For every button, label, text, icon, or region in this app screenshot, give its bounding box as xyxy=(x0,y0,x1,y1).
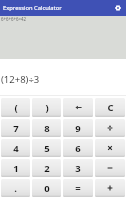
staticText: ( xyxy=(14,101,18,114)
staticText: 3 xyxy=(75,162,81,175)
button[interactable]: 0 xyxy=(32,179,61,197)
button[interactable] xyxy=(95,139,125,157)
button[interactable]: 4 xyxy=(1,139,30,157)
staticText: Expression Calculator xyxy=(3,4,110,12)
staticText: 6+6+6+6=42 xyxy=(1,16,27,22)
button[interactable]: C xyxy=(95,98,125,117)
button[interactable]: 2 xyxy=(32,159,61,177)
button[interactable]: 7 xyxy=(1,119,30,137)
staticText: 1 xyxy=(13,162,19,175)
staticText: 2 xyxy=(44,162,50,175)
staticText: 7 xyxy=(13,122,19,135)
button[interactable] xyxy=(95,159,125,177)
staticText: 8 xyxy=(44,122,50,135)
button[interactable]: ( xyxy=(1,98,30,117)
staticText: (12+8)÷3 xyxy=(1,73,40,86)
staticText: = xyxy=(75,182,81,195)
staticText: 5 xyxy=(44,142,50,155)
button[interactable]: 6 xyxy=(63,139,93,157)
button[interactable] xyxy=(95,119,125,137)
button[interactable]: 5 xyxy=(32,139,61,157)
staticText: C xyxy=(107,101,114,114)
staticText: 9 xyxy=(75,122,81,135)
staticText: . xyxy=(14,182,17,195)
button[interactable]: Settings xyxy=(110,0,126,16)
button[interactable]: 8 xyxy=(32,119,61,137)
button[interactable]: ) xyxy=(32,98,61,117)
button[interactable]: . xyxy=(1,179,30,197)
staticText: 0 xyxy=(44,182,50,195)
staticText: 4 xyxy=(13,142,19,155)
button[interactable]: 1 xyxy=(1,159,30,177)
staticText: ) xyxy=(45,101,49,114)
button[interactable]: 3 xyxy=(63,159,93,177)
button[interactable]: 9 xyxy=(63,119,93,137)
button[interactable]: Backspace xyxy=(63,98,93,117)
button[interactable] xyxy=(95,179,125,197)
staticText: 6 xyxy=(75,142,81,155)
button[interactable]: = xyxy=(63,179,93,197)
